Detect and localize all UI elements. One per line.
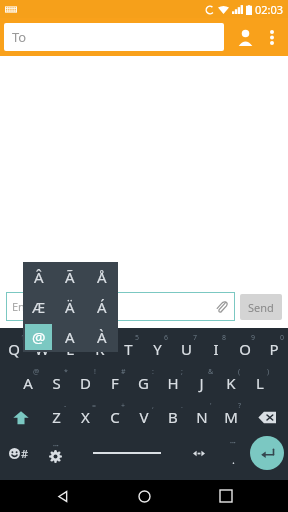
staticText: ': [210, 401, 212, 411]
staticText: *: [64, 367, 68, 377]
button[interactable]: F: [100, 366, 129, 400]
staticText: ?: [238, 401, 242, 411]
button[interactable]: V: [129, 400, 158, 434]
button[interactable]: H: [158, 366, 187, 400]
button[interactable]: Recents: [206, 480, 246, 512]
button[interactable]: N: [187, 400, 216, 434]
button[interactable]: À: [88, 324, 116, 350]
staticText: 1: [21, 333, 26, 343]
staticText: S: [52, 373, 61, 393]
button[interactable]: Backspace: [245, 400, 288, 434]
staticText: -: [64, 401, 67, 411]
staticText: 7: [193, 333, 198, 343]
staticText: @: [33, 367, 40, 377]
button[interactable]: Å: [88, 264, 116, 290]
staticText: 02:03: [255, 2, 284, 17]
button[interactable]: U: [172, 332, 201, 366]
staticText: 8: [222, 333, 227, 343]
button[interactable]: M: [216, 400, 245, 434]
button[interactable]: G: [129, 366, 158, 400]
staticText: (: [238, 367, 241, 377]
staticText: T: [124, 339, 133, 359]
staticText: V: [139, 407, 149, 427]
staticText: F: [111, 373, 119, 393]
button[interactable]: Y: [143, 332, 172, 366]
staticText: L: [256, 373, 264, 393]
staticText: #: [21, 446, 29, 461]
staticText: N: [196, 407, 208, 427]
button[interactable]: Q: [0, 332, 28, 366]
button[interactable]: Period: [216, 434, 250, 472]
staticText: Y: [153, 339, 162, 359]
button[interactable]: L: [245, 366, 274, 400]
staticText: .: [181, 401, 183, 411]
staticText: Send: [248, 300, 274, 315]
button[interactable]: To: [4, 23, 224, 51]
staticText: P: [269, 339, 279, 359]
button[interactable]: I: [201, 332, 230, 366]
staticText: D: [80, 373, 91, 393]
button[interactable]: A: [56, 324, 84, 350]
button[interactable]: Emoji and symbols: [0, 434, 38, 472]
button[interactable]: Shift: [0, 400, 42, 434]
staticText: Á: [97, 297, 107, 317]
button[interactable]: Æ: [25, 294, 52, 320]
button[interactable]: Enter: [250, 436, 284, 470]
button[interactable]: K: [216, 366, 245, 400]
button[interactable]: O: [230, 332, 259, 366]
staticText: •••: [53, 443, 59, 450]
button[interactable]: Add contact: [230, 22, 260, 52]
staticText: H: [167, 373, 179, 393]
button[interactable]: Á: [88, 294, 116, 320]
button[interactable]: Enter message: [6, 292, 235, 321]
button[interactable]: More options: [260, 25, 284, 49]
button[interactable]: W: [28, 332, 56, 366]
button[interactable]: D: [71, 366, 100, 400]
staticText: 0: [280, 333, 285, 343]
staticText: C: [110, 407, 120, 427]
button[interactable]: Settings: [38, 434, 72, 472]
staticText: À: [97, 327, 107, 347]
button[interactable]: S: [42, 366, 71, 400]
staticText: !: [94, 367, 96, 377]
button[interactable]: P: [259, 332, 288, 366]
staticText: K: [226, 373, 236, 393]
button[interactable]: R: [85, 332, 114, 366]
button[interactable]: T: [114, 332, 143, 366]
button[interactable]: Ã: [56, 264, 84, 290]
staticText: Æ: [32, 297, 46, 317]
staticText: ,: [152, 401, 154, 411]
staticText: Ä: [65, 297, 75, 317]
staticText: R: [95, 339, 105, 359]
button[interactable]: Cursor control: [182, 434, 216, 472]
button[interactable]: J: [187, 366, 216, 400]
button[interactable]: E: [56, 332, 85, 366]
button[interactable]: C: [100, 400, 129, 434]
staticText: #: [121, 367, 126, 377]
staticText: To: [12, 28, 27, 46]
button[interactable]: A: [13, 366, 42, 400]
staticText: &: [208, 367, 214, 377]
staticText: G: [138, 373, 149, 393]
staticText: 5: [135, 333, 140, 343]
staticText: •••: [230, 440, 236, 447]
staticText: Å: [97, 267, 107, 287]
button[interactable]: X: [71, 400, 100, 434]
staticText: O: [239, 339, 251, 359]
staticText: 4: [106, 333, 111, 343]
staticText: =: [92, 401, 97, 411]
button[interactable]: Space: [72, 434, 182, 472]
staticText: Z: [52, 407, 61, 427]
button[interactable]: Back: [42, 480, 82, 512]
button[interactable]: @: [25, 324, 52, 350]
button[interactable]: Z: [42, 400, 71, 434]
staticText: X: [81, 407, 90, 427]
button[interactable]: Â: [25, 264, 52, 290]
staticText: +: [121, 401, 126, 411]
staticText: @: [32, 327, 46, 347]
button[interactable]: Attach: [209, 292, 235, 321]
button[interactable]: Ä: [56, 294, 84, 320]
button[interactable]: Home: [124, 480, 164, 512]
button[interactable]: Send: [240, 294, 282, 320]
button[interactable]: B: [158, 400, 187, 434]
